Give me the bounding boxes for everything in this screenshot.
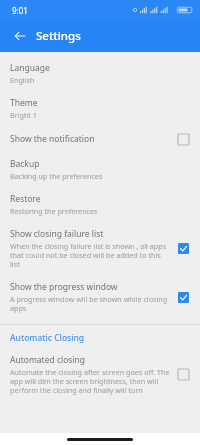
staticText: Automated closing	[10, 354, 86, 366]
staticText: Show the progress window	[10, 281, 118, 293]
button[interactable]: Restore	[0, 187, 200, 222]
staticText: Backup	[10, 158, 40, 170]
button[interactable]: Show the progress window	[0, 275, 200, 319]
staticText: Automate the closing after screen goes o…	[10, 367, 172, 395]
staticText: Show closing failure list	[10, 228, 104, 240]
button[interactable]	[178, 369, 189, 380]
staticText: Settings	[36, 28, 81, 44]
staticText: When the closing failure list is shown ,…	[10, 241, 172, 269]
staticText: Show the notification	[10, 133, 95, 145]
staticText: Automatic Closing	[10, 332, 85, 344]
button[interactable]: Backup	[0, 152, 200, 187]
button[interactable]: Show the notification	[0, 126, 200, 152]
staticText: English	[10, 75, 35, 85]
staticText: Restore	[10, 193, 41, 205]
button[interactable]: Back	[8, 24, 32, 48]
button[interactable]: Show closing failure list	[0, 222, 200, 275]
staticText: Theme	[10, 97, 38, 109]
button[interactable]	[178, 134, 189, 145]
staticText: Bright 1	[10, 110, 37, 120]
button[interactable]	[178, 243, 189, 254]
staticText: Restoring the preferences	[10, 206, 98, 216]
button[interactable]: Automated closing	[0, 352, 200, 399]
staticText: Backing up the preferences	[10, 171, 103, 181]
staticText: A progress window will be shown while cl…	[10, 294, 172, 313]
button[interactable]	[178, 292, 189, 303]
button[interactable]: Theme	[0, 91, 200, 126]
staticText: 9:01	[12, 5, 28, 16]
staticText: Language	[10, 62, 50, 74]
button[interactable]: Language	[0, 56, 200, 91]
